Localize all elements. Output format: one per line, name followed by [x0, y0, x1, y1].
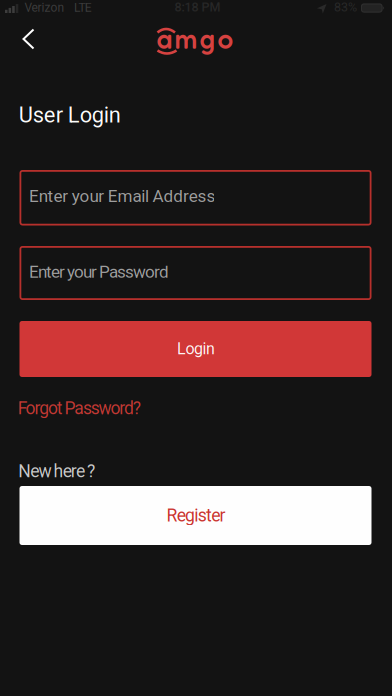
staticText: User Login — [19, 102, 121, 128]
staticText: Enter your Password — [29, 262, 169, 282]
staticText: 8:18 PM — [174, 0, 220, 14]
staticText: Register — [166, 505, 226, 526]
staticText: Login — [177, 339, 215, 358]
staticText: 83% — [334, 0, 357, 14]
staticText: LTE — [74, 1, 92, 15]
staticText: Verizon — [24, 1, 64, 15]
staticText: Enter your Email Address — [29, 186, 215, 206]
staticText: Forgot Password? — [18, 398, 141, 418]
staticText: New here ? — [18, 461, 95, 481]
staticText: a m g o — [156, 21, 233, 55]
